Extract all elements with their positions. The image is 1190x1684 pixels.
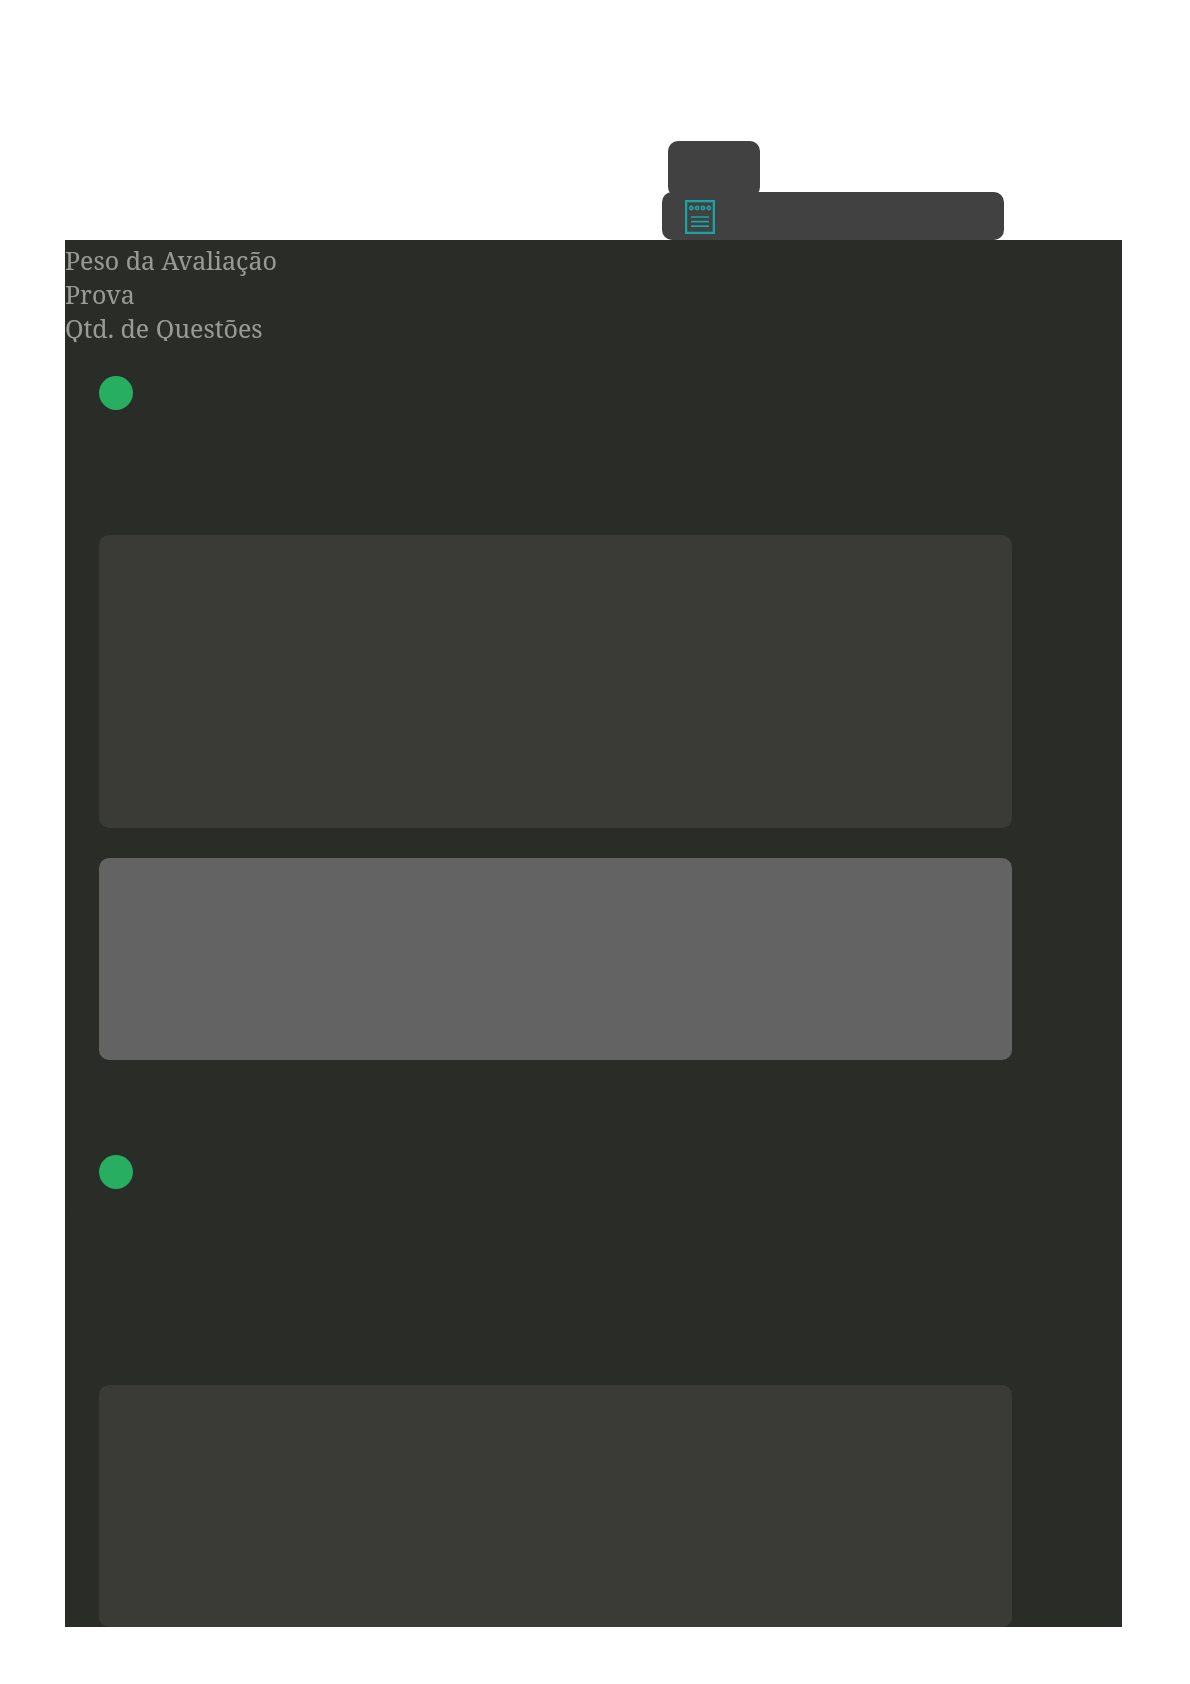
staticText: Nota — [65, 345, 122, 379]
button[interactable]: Notas — [685, 200, 715, 234]
staticText: Qtd. de Questões — [65, 311, 263, 345]
button[interactable] — [65, 1203, 1046, 1627]
button[interactable] — [668, 141, 760, 197]
staticText: Prova — [65, 277, 135, 311]
staticText: Peso da Avaliação — [65, 243, 277, 277]
button[interactable] — [65, 341, 1046, 1198]
